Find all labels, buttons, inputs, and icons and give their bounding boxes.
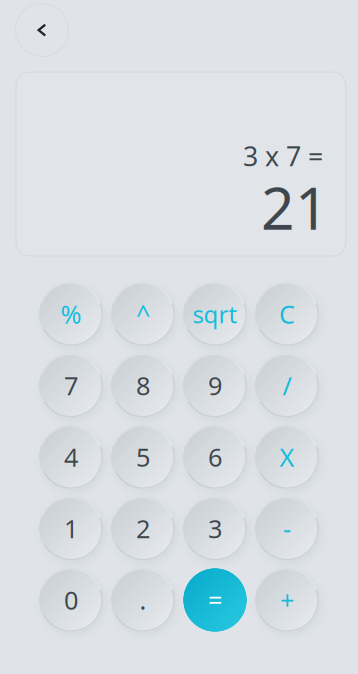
button[interactable]: ^	[111, 282, 174, 345]
button[interactable]: 2	[111, 497, 174, 560]
button[interactable]: +	[255, 568, 318, 631]
button[interactable]: 1	[39, 497, 102, 560]
button[interactable]: 5	[111, 425, 174, 488]
staticText: =	[208, 583, 222, 617]
staticText: 9	[208, 369, 222, 402]
staticText: /	[282, 369, 291, 402]
staticText: X	[279, 440, 294, 474]
staticText: 2	[136, 512, 150, 545]
staticText: 21	[261, 168, 329, 246]
staticText: 3	[208, 512, 222, 545]
staticText: .	[139, 583, 146, 617]
staticText: 4	[64, 440, 78, 474]
button[interactable]: Back	[15, 3, 68, 56]
button[interactable]: 9	[183, 354, 246, 417]
button[interactable]: 6	[183, 425, 246, 488]
staticText: %	[60, 297, 81, 331]
staticText: -	[283, 512, 291, 545]
button[interactable]: 0	[39, 568, 102, 631]
button[interactable]: .	[111, 568, 174, 631]
button[interactable]: /	[255, 354, 318, 417]
button[interactable]: 4	[39, 425, 102, 488]
button[interactable]: -	[255, 497, 318, 560]
staticText: 5	[136, 440, 150, 474]
button[interactable]: C	[255, 282, 318, 345]
button[interactable]: 3	[183, 497, 246, 560]
button[interactable]: 8	[111, 354, 174, 417]
button[interactable]: %	[39, 282, 102, 345]
staticText: 3 x 7 =	[243, 138, 323, 174]
button[interactable]: sqrt	[183, 282, 246, 345]
staticText: sqrt	[192, 298, 237, 330]
staticText: 0	[64, 583, 78, 617]
staticText: C	[279, 297, 295, 331]
button[interactable]: =	[183, 568, 246, 631]
button[interactable]: X	[255, 425, 318, 488]
staticText: 8	[136, 369, 150, 402]
staticText: 7	[64, 369, 78, 402]
staticText: +	[280, 583, 294, 617]
staticText: ^	[136, 297, 150, 331]
staticText: 1	[64, 512, 78, 545]
staticText: 6	[208, 440, 222, 474]
button[interactable]: 7	[39, 354, 102, 417]
